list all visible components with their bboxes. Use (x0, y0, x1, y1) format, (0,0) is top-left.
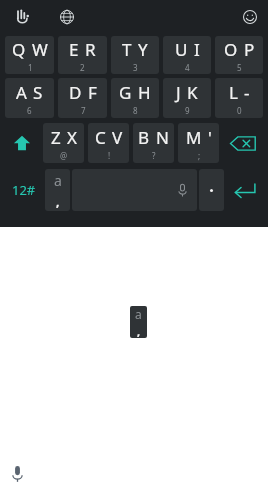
staticText: , (137, 324, 141, 338)
staticText: O (224, 38, 238, 61)
button[interactable] (199, 169, 224, 211)
button[interactable]: L (215, 78, 263, 118)
button[interactable]: a (130, 306, 147, 338)
staticText: P (244, 38, 255, 61)
staticText: ' (208, 126, 212, 149)
button[interactable]: T (111, 36, 159, 74)
staticText: @ (60, 150, 68, 161)
button[interactable]: J (163, 78, 211, 118)
button[interactable]: A (5, 78, 54, 118)
staticText: 6 (27, 105, 32, 116)
button[interactable]: a (45, 169, 70, 211)
button[interactable]: Voice input (8, 465, 26, 483)
staticText: a (135, 306, 142, 322)
button[interactable]: Change language (55, 5, 79, 29)
button[interactable]: M (178, 123, 219, 163)
button[interactable]: O (215, 36, 263, 74)
staticText: R (85, 38, 96, 61)
staticText: N (156, 126, 169, 149)
staticText: H (138, 81, 151, 104)
staticText: 3 (133, 62, 138, 73)
button[interactable]: Handwriting input (10, 5, 34, 29)
staticText: 5 (237, 62, 242, 73)
button[interactable]: Space (72, 169, 197, 211)
staticText: 1 (28, 62, 33, 73)
staticText: G (119, 81, 132, 104)
staticText: J (176, 81, 181, 104)
staticText: C (95, 126, 106, 149)
staticText: I (194, 38, 200, 61)
staticText: 7 (81, 105, 86, 116)
staticText: K (187, 81, 198, 104)
staticText: U (175, 38, 188, 61)
staticText: a (54, 171, 62, 190)
button[interactable]: Backspace (221, 120, 265, 166)
staticText: , (56, 193, 60, 209)
button[interactable]: Shift (3, 120, 41, 166)
staticText: Q (12, 38, 26, 61)
staticText: L (229, 81, 238, 104)
staticText: Y (138, 38, 148, 61)
staticText: A (16, 81, 27, 104)
button[interactable]: C (88, 123, 129, 163)
staticText: T (122, 38, 132, 61)
staticText: 9 (185, 105, 190, 116)
button[interactable]: Q (5, 36, 54, 74)
staticText: B (138, 126, 150, 149)
button[interactable]: 12# (3, 169, 44, 211)
staticText: 12# (12, 181, 36, 199)
staticText: X (67, 126, 77, 149)
staticText: 2 (80, 62, 85, 73)
button[interactable]: Emoji (238, 5, 262, 29)
button[interactable]: U (163, 36, 211, 74)
button[interactable]: Enter (225, 169, 265, 211)
staticText: E (69, 38, 79, 61)
staticText: V (112, 126, 123, 149)
staticText: ? (152, 150, 156, 161)
staticText: 4 (185, 62, 190, 73)
staticText: 8 (133, 105, 138, 116)
staticText: 0 (237, 105, 242, 116)
staticText: D (69, 81, 82, 104)
button[interactable]: Z (43, 123, 84, 163)
staticText: S (33, 81, 43, 104)
staticText: - (244, 81, 250, 104)
staticText: Z (51, 126, 61, 149)
button[interactable]: D (58, 78, 107, 118)
staticText: ! (108, 150, 111, 161)
button[interactable]: G (111, 78, 159, 118)
staticText: F (88, 81, 97, 104)
staticText: W (32, 38, 48, 61)
staticText: ; (198, 150, 201, 161)
button[interactable]: E (58, 36, 107, 74)
button[interactable]: B (133, 123, 174, 163)
staticText: M (186, 126, 202, 149)
